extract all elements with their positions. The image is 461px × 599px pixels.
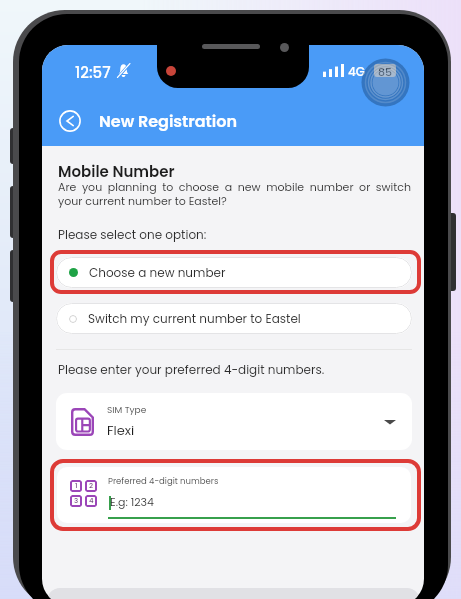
button[interactable]: Switch my current number to Eastel (56, 303, 412, 334)
staticText: E.g: 1234 (110, 494, 154, 509)
staticText: Switch my current number to Eastel (88, 310, 301, 327)
button[interactable]: 1 (57, 467, 411, 523)
staticText: 85 (378, 64, 393, 77)
staticText: 4G (348, 63, 366, 80)
staticText: 2 (89, 481, 94, 491)
staticText: Choose a new number (89, 264, 226, 281)
staticText: Preferred 4-digit numbers (108, 475, 219, 487)
staticText: 3 (74, 496, 79, 506)
staticText: SIM Type (107, 404, 147, 417)
staticText: 1 (75, 481, 78, 491)
button[interactable]: Back (56, 107, 84, 135)
staticText: Are you planning to choose a new mobile … (58, 179, 411, 209)
staticText: 12:57 (75, 62, 111, 83)
button[interactable]: Choose a new number (56, 257, 412, 288)
staticText: New Registration (99, 110, 238, 132)
staticText: Please select one option: (58, 226, 207, 243)
button[interactable]: SIM Type (56, 393, 412, 450)
staticText: Flexi (107, 421, 135, 439)
staticText: Mobile Number (58, 161, 175, 182)
staticText: Please enter your preferred 4-digit numb… (58, 361, 325, 378)
staticText: 4 (89, 496, 94, 506)
